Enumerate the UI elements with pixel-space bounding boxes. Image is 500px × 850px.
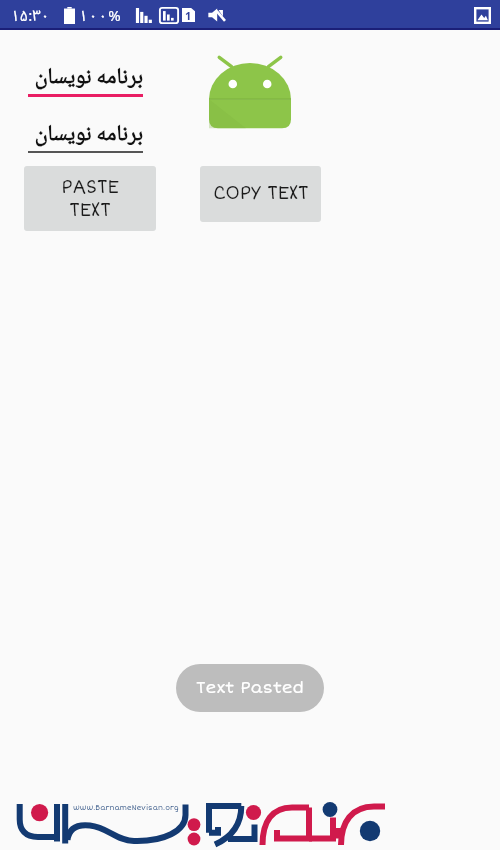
staticText: COPY TEXT xyxy=(213,183,309,205)
staticText: برنامه نویسان xyxy=(28,116,143,153)
other: Screenshot xyxy=(474,7,491,24)
staticText: Text Pasted xyxy=(196,678,304,698)
staticText: برنامه نویسان xyxy=(28,59,143,96)
staticText: 1 xyxy=(185,8,192,22)
other: Sound off xyxy=(208,8,225,22)
staticText: ۱۰۰% xyxy=(79,0,123,30)
button[interactable]: PASTE TEXT xyxy=(24,166,156,231)
staticText: www.BarnameNevisan.org xyxy=(73,803,179,812)
button[interactable]: COPY TEXT xyxy=(200,166,321,222)
staticText: PASTE TEXT xyxy=(61,177,119,221)
staticText: ۱۵:۳۰ xyxy=(11,0,50,30)
